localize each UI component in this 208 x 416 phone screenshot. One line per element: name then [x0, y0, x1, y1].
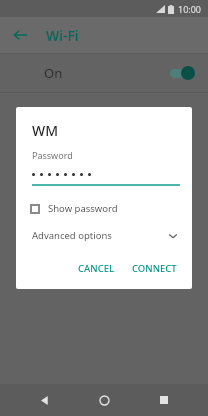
button[interactable]: Back: [30, 385, 60, 415]
button[interactable]: Show password: [30, 202, 180, 215]
button[interactable]: CONNECT: [125, 256, 184, 281]
button[interactable]: Home: [89, 385, 119, 415]
staticText: On: [44, 64, 63, 82]
staticText: WM: [32, 121, 59, 140]
staticText: Show password: [48, 202, 118, 215]
staticText: Advanced options: [32, 229, 112, 242]
button[interactable]: Back: [8, 23, 32, 47]
staticText: CANCEL: [78, 262, 115, 275]
button[interactable]: Advanced options: [32, 229, 178, 242]
other: Wi-Fi toggle: [168, 65, 196, 81]
staticText: Wi-Fi: [46, 26, 79, 45]
button[interactable]: CANCEL: [71, 256, 122, 281]
staticText: Password: [32, 149, 73, 161]
staticText: 10:00: [178, 3, 202, 15]
button[interactable]: On: [0, 54, 208, 92]
button[interactable]: Recent apps: [149, 385, 179, 415]
staticText: CONNECT: [132, 262, 177, 275]
